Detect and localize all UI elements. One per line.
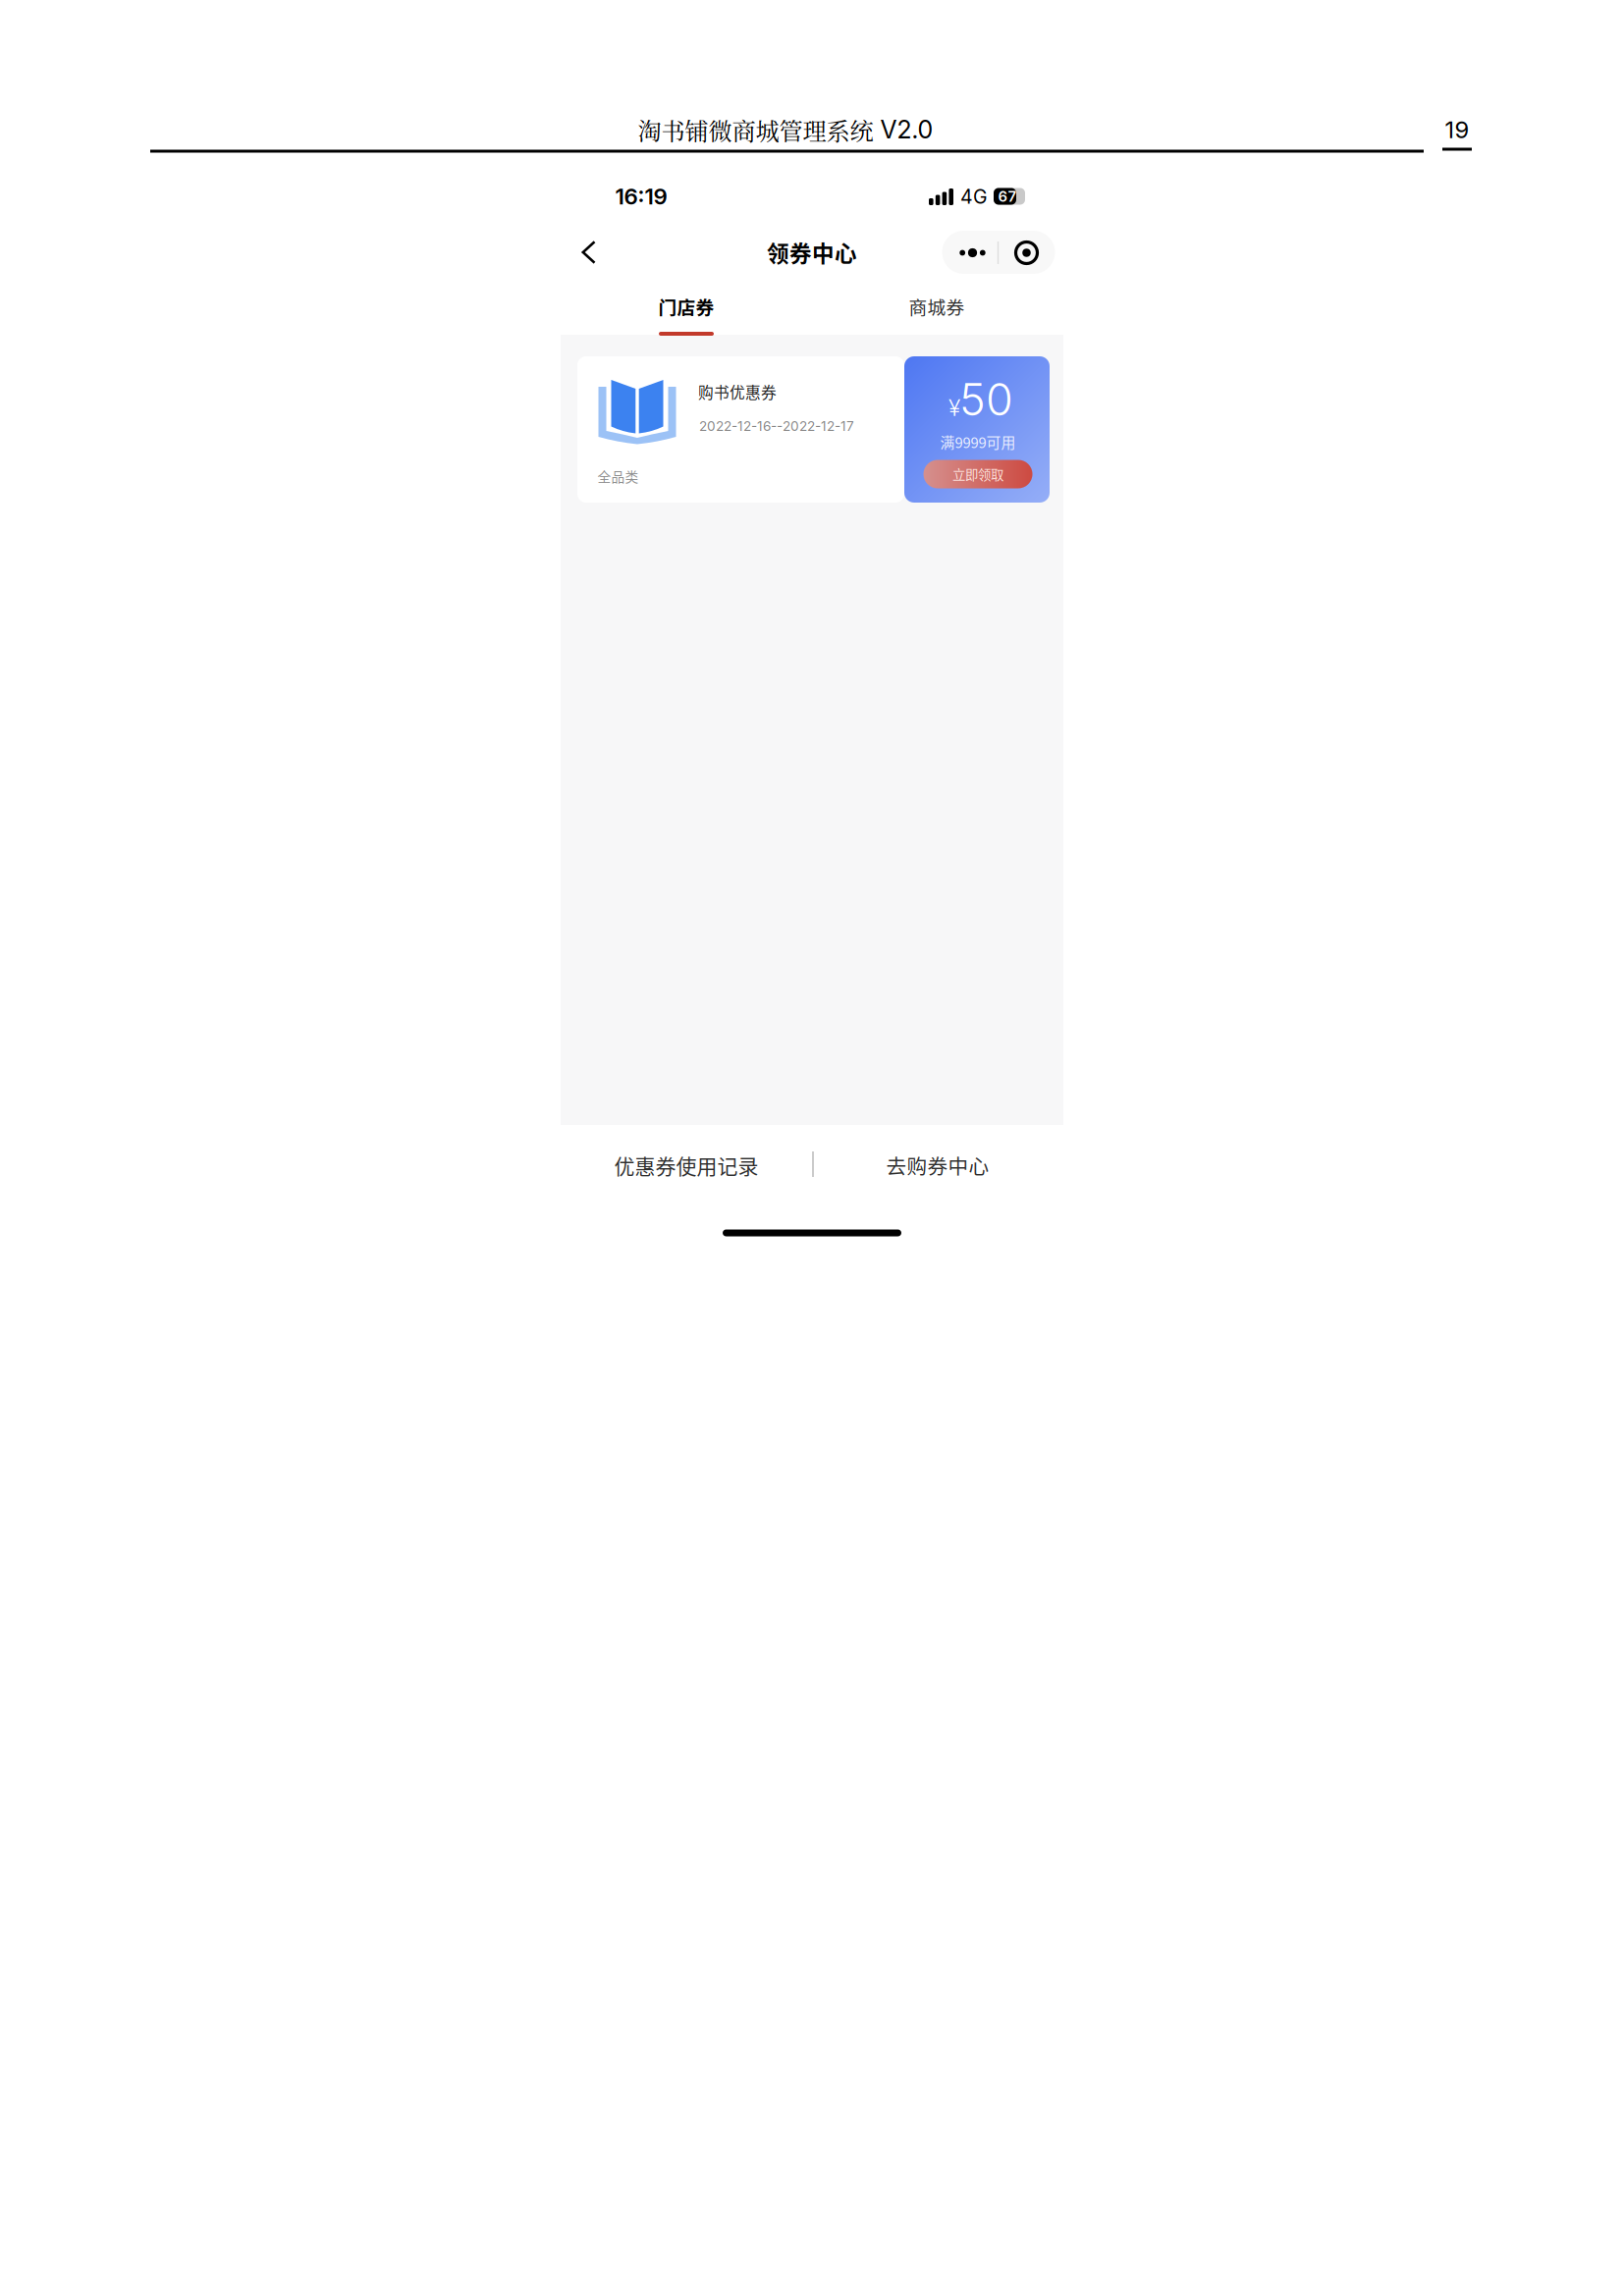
staticText: 门店券 <box>658 293 714 320</box>
staticText: 2022-12-16--2022-12-17 <box>699 418 854 434</box>
staticText: 商城券 <box>909 293 965 320</box>
button[interactable]: 商城券 <box>876 285 998 351</box>
staticText: 购书优惠券 <box>698 380 777 403</box>
staticText: 淘书铺微商城管理系统 <box>638 112 873 147</box>
staticText: 领券中心 <box>767 236 857 268</box>
button[interactable]: 去购券中心 <box>869 1141 1006 1190</box>
staticText: 去购券中心 <box>886 1151 989 1180</box>
staticText: 全品类 <box>597 466 639 486</box>
staticText: 满9999可用 <box>940 431 1016 452</box>
staticText: 19 <box>1445 115 1469 144</box>
staticText: V2.0 <box>880 115 933 144</box>
staticText: 优惠券使用记录 <box>614 1150 758 1180</box>
button[interactable]: 门店券 <box>625 285 747 351</box>
staticText: 50 <box>959 373 1013 426</box>
button[interactable]: More options and close mini program <box>942 231 1055 274</box>
staticText: 16:19 <box>615 183 667 210</box>
staticText: 67 <box>998 187 1017 205</box>
button[interactable]: 购书优惠券 <box>577 356 904 503</box>
button[interactable]: Back <box>567 230 612 275</box>
staticText: ¥ <box>948 394 960 422</box>
staticText: 立即领取 <box>952 465 1003 484</box>
staticText: 4G <box>960 185 988 208</box>
button[interactable]: 优惠券使用记录 <box>598 1141 775 1190</box>
button[interactable]: 立即领取 <box>923 460 1032 488</box>
